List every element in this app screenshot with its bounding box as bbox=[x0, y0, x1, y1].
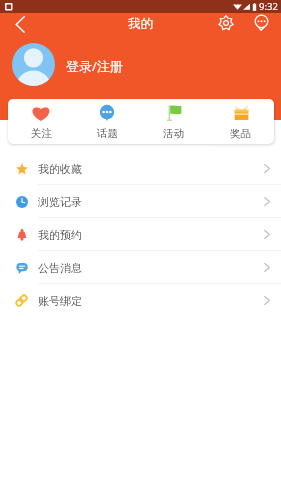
button[interactable]: Messages bbox=[249, 10, 273, 34]
staticText: 我的收藏 bbox=[38, 162, 82, 176]
staticText: 关注 bbox=[31, 127, 52, 140]
staticText: 公告消息 bbox=[38, 261, 82, 275]
staticText: 9:32 bbox=[259, 0, 278, 13]
staticText: 浏览记录 bbox=[38, 195, 82, 209]
button[interactable]: 我的预约 bbox=[0, 218, 281, 251]
staticText: 账号绑定 bbox=[38, 294, 82, 308]
button[interactable]: 浏览记录 bbox=[0, 185, 281, 218]
button[interactable]: 账号绑定 bbox=[0, 284, 281, 317]
staticText: 我的预约 bbox=[38, 228, 82, 242]
button[interactable]: 活动 bbox=[140, 100, 207, 140]
button[interactable]: 公告消息 bbox=[0, 251, 281, 284]
staticText: 登录/注册 bbox=[66, 57, 123, 75]
staticText: 我的 bbox=[128, 16, 153, 32]
button[interactable]: Back bbox=[8, 12, 32, 36]
staticText: 活动 bbox=[163, 127, 184, 140]
button[interactable]: 奖品 bbox=[207, 100, 274, 140]
staticText: 奖品 bbox=[230, 127, 251, 140]
button[interactable]: 关注 bbox=[8, 100, 74, 140]
button[interactable]: 我的收藏 bbox=[0, 152, 281, 185]
staticText: 话题 bbox=[97, 127, 118, 140]
button[interactable]: Settings bbox=[214, 11, 238, 35]
button[interactable]: 话题 bbox=[74, 100, 140, 140]
